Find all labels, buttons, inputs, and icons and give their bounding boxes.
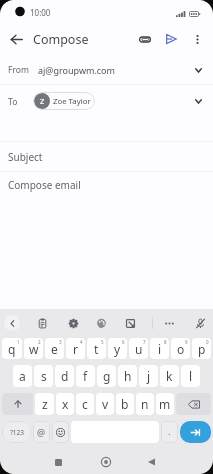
button[interactable]: q xyxy=(2,338,22,359)
staticText: Compose email xyxy=(8,178,81,192)
staticText: Subject xyxy=(8,150,43,164)
staticText: ?123 xyxy=(10,428,24,437)
button[interactable]: y xyxy=(108,338,127,359)
button[interactable]: p xyxy=(192,338,211,359)
button[interactable]: From xyxy=(0,55,213,84)
button[interactable]: a xyxy=(13,365,32,387)
button[interactable]: Attach file xyxy=(133,27,157,51)
staticText: 5 xyxy=(101,339,104,345)
staticText: f xyxy=(83,368,88,384)
staticText: d xyxy=(61,368,69,384)
staticText: i xyxy=(158,341,162,357)
button[interactable]: m xyxy=(156,393,174,415)
staticText: m xyxy=(159,396,171,412)
staticText: 0 xyxy=(206,339,209,345)
button[interactable]: Resize xyxy=(122,315,138,331)
staticText: Z xyxy=(40,96,45,106)
staticText: u xyxy=(135,341,143,357)
button[interactable]: Theme xyxy=(93,315,109,331)
button[interactable]: c xyxy=(76,393,94,415)
button[interactable]: r xyxy=(66,338,85,359)
button[interactable]: Send xyxy=(159,27,183,51)
staticText: s xyxy=(41,368,47,384)
button[interactable]: Compose email xyxy=(0,172,213,198)
button[interactable]: s xyxy=(34,365,53,387)
button[interactable]: Expand xyxy=(186,58,210,82)
button[interactable]: i xyxy=(150,338,169,359)
staticText: Compose xyxy=(33,31,89,48)
staticText: 7 xyxy=(143,339,146,345)
button[interactable]: l xyxy=(181,365,200,387)
button[interactable]: Enter xyxy=(180,421,211,443)
staticText: p xyxy=(198,341,206,357)
button[interactable]: Home xyxy=(92,450,120,474)
button[interactable]: Clipboard xyxy=(34,315,50,331)
button[interactable]: Previous xyxy=(4,315,20,331)
button[interactable]: b xyxy=(116,393,134,415)
button[interactable]: w xyxy=(24,338,43,359)
staticText: 9 xyxy=(185,339,188,345)
button[interactable]: Shift xyxy=(2,393,33,415)
staticText: e xyxy=(51,341,58,357)
button[interactable]: t xyxy=(87,338,106,359)
staticText: b xyxy=(121,396,129,412)
button[interactable]: More options xyxy=(185,27,209,51)
button[interactable]: e xyxy=(45,338,64,359)
button[interactable]: h xyxy=(118,365,137,387)
button[interactable]: z xyxy=(35,393,54,415)
button[interactable]: Expand xyxy=(186,89,210,113)
staticText: 6 xyxy=(122,339,125,345)
staticText: r xyxy=(73,341,78,357)
staticText: t xyxy=(94,341,99,357)
staticText: k xyxy=(166,368,173,384)
button[interactable]: Backspace xyxy=(176,393,211,415)
button[interactable]: Subject xyxy=(0,142,213,171)
staticText: o xyxy=(177,341,185,357)
button[interactable]: ?123 xyxy=(2,421,31,443)
button[interactable]: g xyxy=(97,365,116,387)
button[interactable]: u xyxy=(129,338,148,359)
button[interactable]: k xyxy=(160,365,179,387)
staticText: @ xyxy=(37,426,46,438)
staticText: q xyxy=(8,341,16,357)
button[interactable]: o xyxy=(171,338,190,359)
staticText: 8 xyxy=(164,339,167,345)
button[interactable]: v xyxy=(96,393,114,415)
staticText: 3 xyxy=(59,339,62,345)
staticText: v xyxy=(102,396,109,412)
button[interactable]: Emoji xyxy=(52,421,69,443)
button[interactable]: x xyxy=(56,393,74,415)
button[interactable]: n xyxy=(136,393,154,415)
button[interactable]: Z xyxy=(33,92,95,110)
staticText: g xyxy=(103,368,111,384)
staticText: From xyxy=(8,64,29,76)
staticText: l xyxy=(189,368,193,384)
button[interactable]: j xyxy=(139,365,158,387)
staticText: x xyxy=(62,396,69,412)
button[interactable]: Mute xyxy=(192,315,208,331)
staticText: z xyxy=(42,396,48,412)
staticText: h xyxy=(124,368,132,384)
button[interactable]: Back xyxy=(137,450,165,474)
staticText: 2 xyxy=(38,339,41,345)
button[interactable]: @ xyxy=(33,421,50,443)
staticText: 4 xyxy=(80,339,83,345)
button[interactable]: Recents xyxy=(44,450,72,474)
staticText: j xyxy=(147,368,151,384)
staticText: aj@groupwm.com xyxy=(38,64,115,76)
staticText: 1 xyxy=(17,339,20,345)
button[interactable]: . xyxy=(161,421,178,443)
button[interactable]: More xyxy=(161,315,177,331)
staticText: a xyxy=(19,368,26,384)
staticText: w xyxy=(29,341,39,357)
button[interactable]: d xyxy=(55,365,74,387)
button[interactable]: To xyxy=(0,85,213,141)
staticText: c xyxy=(82,396,88,412)
staticText: . xyxy=(168,425,171,437)
staticText: To xyxy=(8,96,18,108)
button[interactable]: Settings xyxy=(65,315,81,331)
button[interactable]: Back xyxy=(4,27,28,51)
button[interactable]: f xyxy=(76,365,95,387)
staticText: Zoe Taylor xyxy=(53,96,91,107)
